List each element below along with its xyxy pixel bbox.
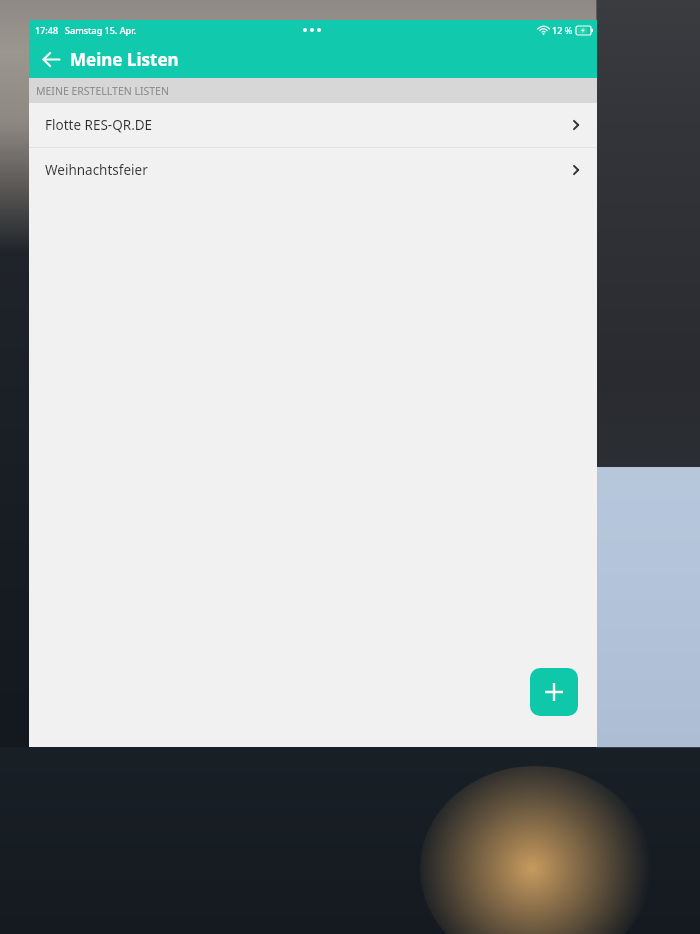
staticText: Weihnachtsfeier <box>45 161 571 179</box>
button[interactable]: Neue Liste hinzufügen <box>530 668 578 716</box>
button[interactable]: Weihnachtsfeier <box>29 148 597 192</box>
staticText: 17:48 Samstag 15. Apr. <box>35 24 136 36</box>
button[interactable]: Flotte RES-QR.DE <box>29 103 597 147</box>
staticText: 12 % <box>552 24 573 36</box>
staticText: Meine Listen <box>70 48 179 71</box>
staticText: Flotte RES-QR.DE <box>45 116 571 134</box>
button[interactable]: Zurück <box>37 45 65 73</box>
staticText: MEINE ERSTELLTEN LISTEN <box>36 84 169 98</box>
